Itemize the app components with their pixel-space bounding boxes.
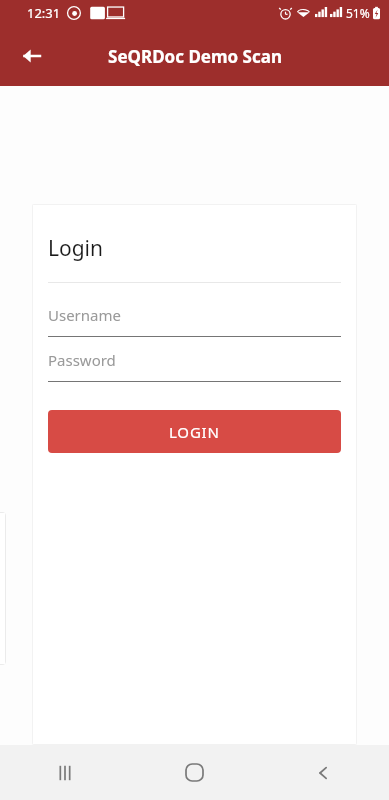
staticText: Username bbox=[48, 305, 121, 325]
button[interactable]: Password bbox=[48, 350, 341, 382]
staticText: 51% bbox=[346, 5, 370, 21]
button[interactable]: Username bbox=[48, 305, 341, 337]
button[interactable]: LOGIN bbox=[48, 410, 341, 453]
button[interactable]: Back bbox=[259, 745, 389, 800]
staticText: 12:31 bbox=[27, 4, 61, 22]
button[interactable]: Recent apps bbox=[0, 745, 129, 800]
staticText: LOGIN bbox=[169, 422, 220, 442]
staticText: SeQRDoc Demo Scan bbox=[108, 45, 282, 68]
staticText: Login bbox=[48, 234, 104, 263]
button[interactable]: Home bbox=[129, 745, 259, 800]
button[interactable]: Back bbox=[12, 36, 52, 76]
staticText: Password bbox=[48, 350, 116, 370]
